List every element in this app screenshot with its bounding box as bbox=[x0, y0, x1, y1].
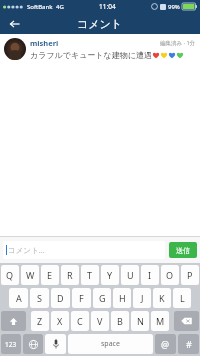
staticText: C bbox=[77, 315, 83, 327]
staticText: V bbox=[97, 315, 103, 327]
button[interactable]: U bbox=[121, 265, 139, 285]
staticText: J bbox=[141, 292, 144, 304]
button[interactable]: J bbox=[133, 288, 151, 308]
staticText: 4G bbox=[56, 3, 64, 11]
staticText: B bbox=[117, 315, 123, 327]
button[interactable]: Backspace bbox=[174, 311, 199, 331]
staticText: H bbox=[119, 292, 126, 304]
button[interactable]: 123 bbox=[1, 334, 21, 354]
button[interactable]: A bbox=[9, 288, 28, 308]
staticText: 11:04 bbox=[99, 2, 116, 11]
staticText: G bbox=[99, 292, 106, 304]
button[interactable]: C bbox=[71, 311, 89, 331]
button[interactable]: V bbox=[91, 311, 109, 331]
button[interactable]: # bbox=[178, 334, 199, 354]
button[interactable]: Change keyboard language bbox=[23, 334, 43, 354]
button[interactable]: Z bbox=[31, 311, 49, 331]
button[interactable]: Voice input bbox=[45, 334, 66, 354]
button[interactable]: B bbox=[111, 311, 129, 331]
staticText: W bbox=[26, 269, 35, 281]
button[interactable]: E bbox=[41, 265, 59, 285]
staticText: K bbox=[159, 292, 165, 304]
staticText: F bbox=[79, 292, 84, 304]
button[interactable]: N bbox=[131, 311, 149, 331]
button[interactable]: Y bbox=[101, 265, 119, 285]
button[interactable]: X bbox=[51, 311, 69, 331]
staticText: L bbox=[180, 292, 185, 304]
staticText: コメント bbox=[77, 17, 123, 31]
staticText: Z bbox=[37, 315, 43, 327]
button[interactable]: K bbox=[153, 288, 171, 308]
staticText: SoftBank bbox=[27, 3, 53, 11]
button[interactable]: H bbox=[113, 288, 131, 308]
button[interactable]: P bbox=[181, 265, 199, 285]
staticText: カラフルでキュートな建物に遭遇 bbox=[30, 50, 152, 60]
staticText: 送信 bbox=[176, 246, 190, 255]
staticText: 99% bbox=[168, 3, 180, 11]
button[interactable]: M bbox=[151, 311, 169, 331]
button[interactable]: T bbox=[81, 265, 99, 285]
button[interactable]: F bbox=[72, 288, 91, 308]
staticText: D bbox=[57, 292, 64, 304]
staticText: I bbox=[148, 269, 152, 281]
button[interactable]: G bbox=[93, 288, 111, 308]
button[interactable]: I bbox=[141, 265, 159, 285]
button[interactable]: コメント... bbox=[3, 241, 165, 259]
button[interactable]: @ bbox=[155, 334, 176, 354]
button[interactable]: O bbox=[161, 265, 179, 285]
button[interactable]: L bbox=[173, 288, 191, 308]
staticText: S bbox=[37, 292, 42, 304]
button[interactable]: W bbox=[21, 265, 39, 285]
staticText: O bbox=[166, 269, 174, 281]
staticText: コメント... bbox=[8, 245, 45, 255]
staticText: A bbox=[16, 292, 22, 304]
button[interactable]: Q bbox=[1, 265, 19, 285]
staticText: 123 bbox=[5, 340, 17, 349]
staticText: P bbox=[187, 269, 193, 281]
staticText: 編集済み · 1分 bbox=[160, 39, 196, 47]
staticText: T bbox=[87, 269, 93, 281]
staticText: R bbox=[67, 269, 73, 281]
button[interactable]: Back bbox=[0, 13, 30, 34]
staticText: N bbox=[137, 315, 144, 327]
button[interactable]: R bbox=[61, 265, 79, 285]
staticText: misheri bbox=[30, 38, 59, 48]
staticText: M bbox=[156, 315, 165, 327]
button[interactable]: space bbox=[68, 334, 153, 354]
button[interactable]: 送信 bbox=[169, 242, 197, 258]
staticText: Q bbox=[6, 269, 14, 281]
button[interactable]: D bbox=[51, 288, 70, 308]
staticText: Y bbox=[107, 269, 113, 281]
staticText: X bbox=[57, 315, 63, 327]
staticText: @ bbox=[161, 338, 170, 350]
button[interactable]: misheri bbox=[0, 34, 200, 64]
staticText: U bbox=[127, 269, 134, 281]
button[interactable]: S bbox=[30, 288, 49, 308]
staticText: E bbox=[47, 269, 53, 281]
staticText: # bbox=[186, 338, 192, 350]
staticText: space bbox=[101, 339, 120, 349]
button[interactable]: Shift bbox=[1, 311, 26, 331]
